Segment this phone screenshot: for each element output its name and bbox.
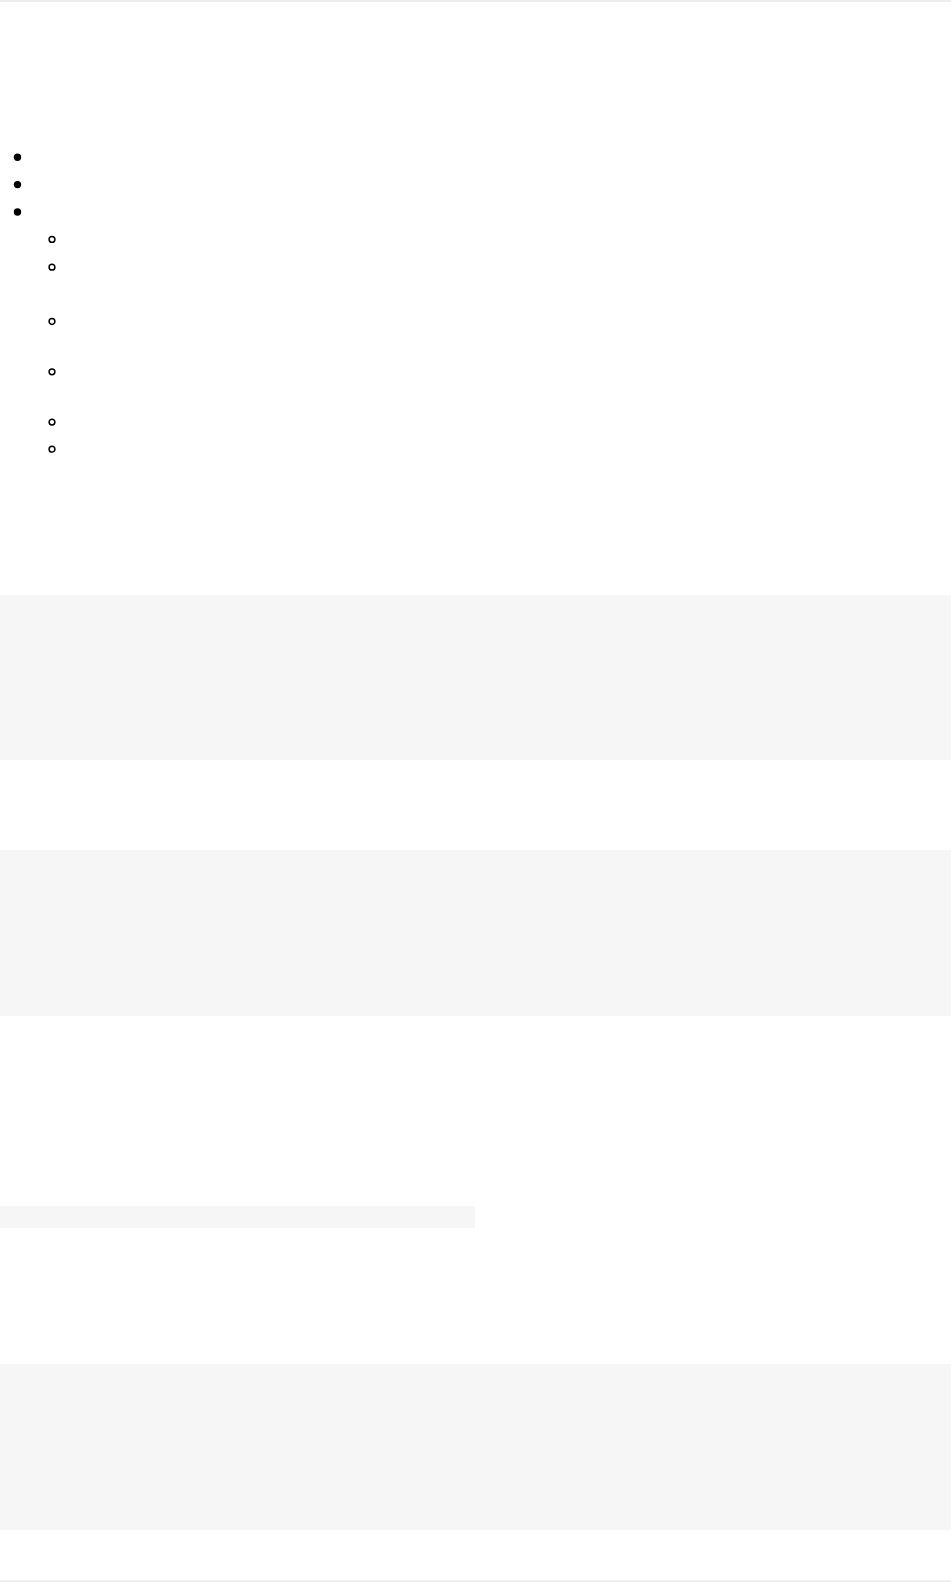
button[interactable]: Nested list item xyxy=(0,229,951,251)
button[interactable]: Nested list item xyxy=(0,311,951,333)
button[interactable]: List item xyxy=(0,200,951,227)
button[interactable]: Nested list item xyxy=(0,411,951,433)
button[interactable]: Nested list item xyxy=(0,361,951,383)
button[interactable]: List item xyxy=(0,173,951,200)
button[interactable]: List item xyxy=(0,146,951,173)
button[interactable]: Nested list item xyxy=(0,438,951,460)
button[interactable]: Nested list item xyxy=(0,256,951,278)
